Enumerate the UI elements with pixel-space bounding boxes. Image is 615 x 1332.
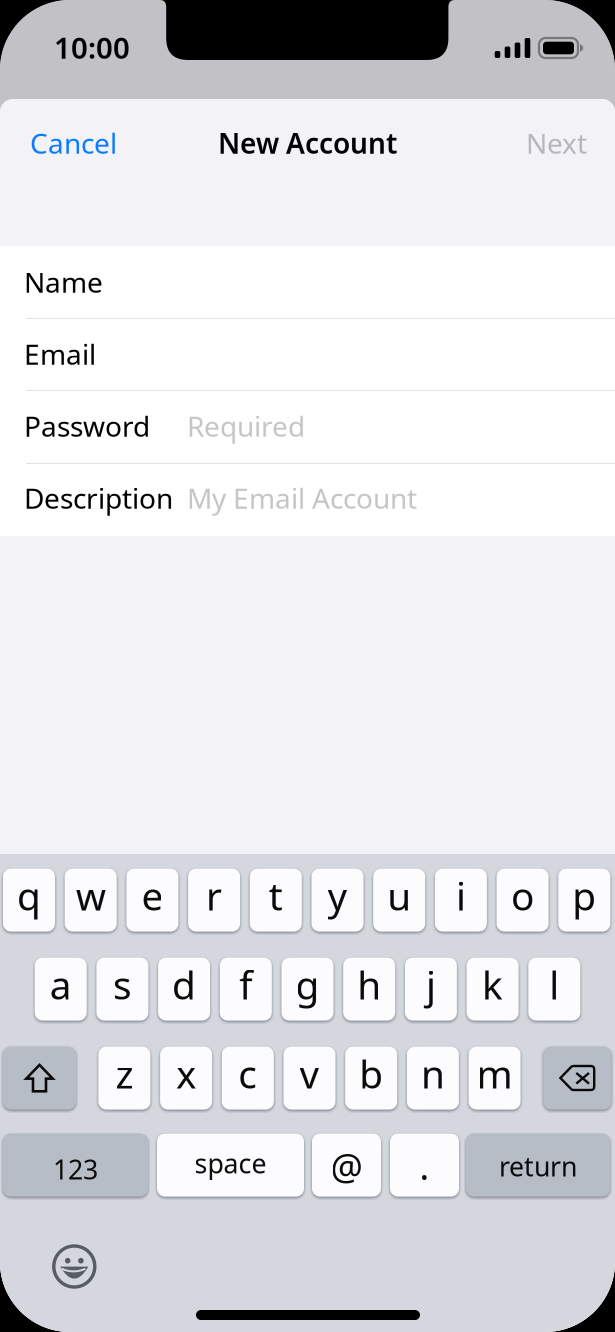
button[interactable]: b [345, 1045, 397, 1111]
button[interactable]: Password [0, 390, 615, 462]
staticText: y [327, 870, 347, 921]
button[interactable]: f [220, 956, 272, 1022]
button[interactable]: Email [0, 318, 615, 390]
button[interactable]: Description [0, 462, 615, 534]
button[interactable]: Delete [543, 1045, 611, 1111]
button[interactable]: e [126, 867, 178, 933]
button[interactable]: c [222, 1045, 274, 1111]
button[interactable]: p [558, 867, 610, 933]
staticText: m [477, 1048, 513, 1099]
staticText: x [176, 1048, 196, 1099]
staticText: k [482, 959, 503, 1010]
button[interactable]: w [65, 867, 117, 933]
button[interactable]: v [283, 1045, 335, 1111]
staticText: New Account [218, 124, 397, 162]
button[interactable]: x [160, 1045, 212, 1111]
staticText: v [299, 1048, 319, 1099]
staticText: Description [24, 479, 173, 517]
staticText: e [141, 870, 163, 921]
staticText: r [206, 870, 222, 921]
staticText: h [357, 959, 381, 1010]
button[interactable]: j [405, 956, 457, 1022]
staticText: f [239, 959, 252, 1010]
button[interactable]: @ [312, 1132, 381, 1198]
staticText: space [194, 1145, 266, 1181]
staticText: Name [24, 263, 103, 301]
staticText: z [115, 1048, 133, 1099]
staticText: g [295, 959, 319, 1010]
staticText: My Email Account [187, 479, 417, 517]
staticText: n [421, 1048, 445, 1099]
button[interactable]: d [158, 956, 210, 1022]
button[interactable]: t [250, 867, 302, 933]
staticText: a [50, 959, 72, 1010]
button[interactable]: g [281, 956, 333, 1022]
staticText: j [426, 959, 436, 1010]
staticText: Next [526, 124, 587, 162]
button[interactable]: Emoji keyboard [48, 1240, 100, 1292]
button[interactable]: Cancel [30, 115, 140, 171]
button[interactable]: y [311, 867, 363, 933]
staticText: Cancel [30, 124, 117, 162]
staticText: Email [24, 335, 96, 373]
button[interactable]: 123 [3, 1132, 148, 1198]
button[interactable]: n [407, 1045, 459, 1111]
staticText: o [511, 870, 534, 921]
staticText: . [419, 1142, 429, 1190]
staticText: Password [24, 407, 150, 445]
staticText: t [269, 870, 283, 921]
button[interactable]: . [390, 1132, 459, 1198]
staticText: Required [187, 407, 305, 445]
staticText: c [238, 1048, 257, 1099]
staticText: 10:00 [54, 28, 130, 67]
button[interactable]: o [497, 867, 549, 933]
button[interactable]: s [96, 956, 148, 1022]
staticText: s [113, 959, 132, 1010]
button[interactable]: space [157, 1132, 304, 1198]
button[interactable]: Next [499, 115, 587, 171]
button[interactable]: Shift [3, 1045, 76, 1111]
staticText: w [76, 870, 106, 921]
staticText: @ [330, 1142, 362, 1190]
staticText: p [572, 870, 596, 921]
button[interactable]: r [188, 867, 240, 933]
button[interactable]: Name [0, 246, 615, 318]
button[interactable]: i [435, 867, 487, 933]
button[interactable]: z [98, 1045, 150, 1111]
staticText: q [17, 870, 41, 921]
button[interactable]: h [343, 956, 395, 1022]
button[interactable]: return [466, 1132, 610, 1198]
staticText: return [499, 1148, 577, 1184]
button[interactable]: q [3, 867, 55, 933]
staticText: b [359, 1048, 383, 1099]
button[interactable]: a [35, 956, 87, 1022]
staticText: i [456, 870, 466, 921]
button[interactable]: u [373, 867, 425, 933]
staticText: 123 [53, 1151, 98, 1187]
staticText: d [172, 959, 196, 1010]
button[interactable]: m [469, 1045, 521, 1111]
staticText: u [387, 870, 411, 921]
button[interactable]: l [528, 956, 580, 1022]
staticText: l [549, 959, 559, 1010]
button[interactable]: k [467, 956, 519, 1022]
